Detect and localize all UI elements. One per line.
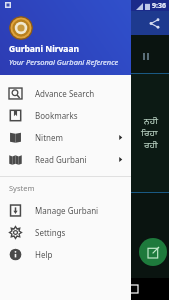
- staticText: Bookmarks: [35, 110, 78, 121]
- button[interactable]: Help: [0, 243, 131, 265]
- button[interactable]: Manage Gurbani: [0, 199, 131, 221]
- staticText: ਨਹੀ: [144, 117, 158, 126]
- staticText: Gurbani Nirvaan: [9, 43, 80, 55]
- button[interactable]: Open: [139, 238, 167, 266]
- staticText: 9:36: [152, 1, 166, 11]
- staticText: Nitnem: [35, 132, 63, 143]
- button[interactable]: Advance Search: [0, 82, 131, 104]
- button[interactable]: Search: [115, 14, 133, 32]
- staticText: Read Gurbani: [35, 154, 87, 165]
- staticText: Help: [35, 249, 53, 260]
- button[interactable]: Settings: [0, 221, 131, 243]
- staticText: Advance Search: [35, 88, 95, 99]
- staticText: Settings: [35, 227, 66, 238]
- button[interactable]: Bookmarks: [0, 104, 131, 126]
- button[interactable]: Nitnem: [0, 126, 131, 148]
- staticText: System: [9, 183, 35, 193]
- staticText: Manage Gurbani: [35, 205, 99, 216]
- staticText: ਰਹੀ: [144, 141, 158, 150]
- button[interactable]: Share: [145, 14, 163, 32]
- button[interactable]: Recents: [125, 280, 143, 298]
- button[interactable]: Read Gurbani: [0, 148, 131, 170]
- staticText: ਰਿਹਾ: [141, 129, 158, 138]
- staticText: Your Personal Gurbani Reference: [9, 57, 119, 67]
